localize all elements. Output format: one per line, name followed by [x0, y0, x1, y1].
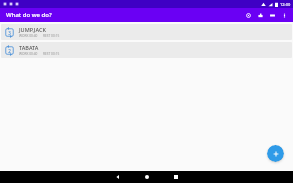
staticText: 3 — [8, 30, 11, 36]
button[interactable]: Rate app — [254, 9, 266, 21]
staticText: 2 — [8, 48, 11, 54]
button[interactable]: More options — [278, 9, 290, 21]
button[interactable]: 3 — [1, 24, 292, 40]
button[interactable]: Add workout — [267, 145, 284, 162]
staticText: REST 00:15 — [43, 34, 60, 38]
button[interactable]: Settings — [242, 9, 254, 21]
button[interactable]: Email — [266, 9, 278, 21]
staticText: WORK 00:40 — [19, 34, 38, 38]
staticText: JUMP.JACK — [19, 26, 46, 33]
staticText: TABATA — [19, 44, 39, 51]
button[interactable]: Recent apps — [167, 171, 185, 183]
staticText: What do we do? — [6, 11, 52, 19]
button[interactable]: 2 — [1, 42, 292, 58]
button[interactable]: Home — [138, 171, 156, 183]
staticText: 12:00 — [280, 2, 291, 7]
button[interactable]: Back — [109, 171, 127, 183]
staticText: REST 00:15 — [43, 52, 60, 56]
staticText: WORK 00:40 — [19, 52, 38, 56]
